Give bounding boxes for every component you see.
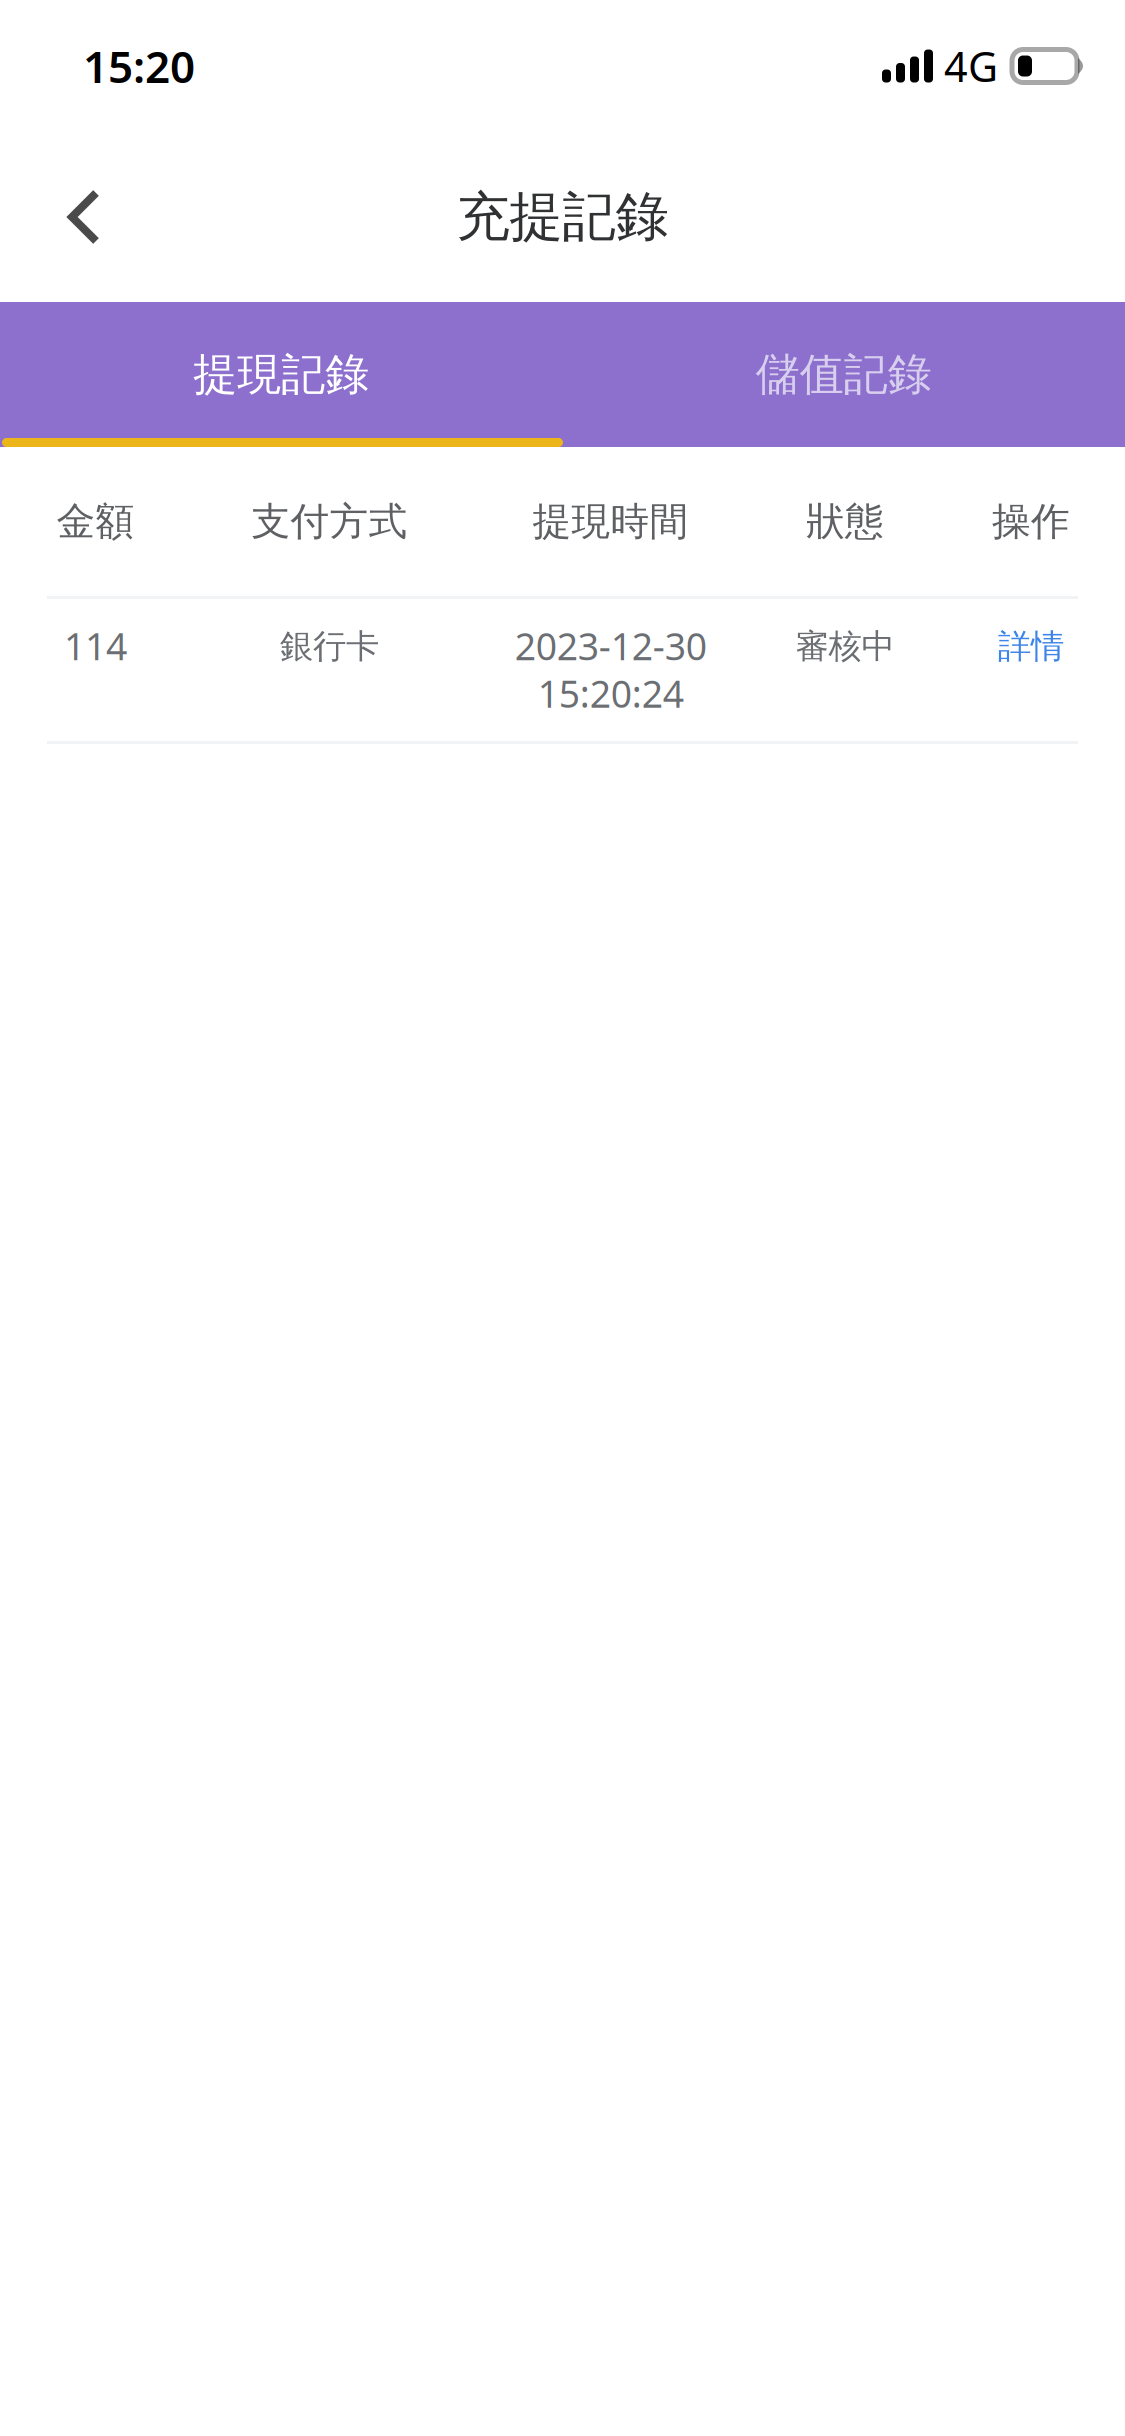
staticText: 4G bbox=[944, 39, 998, 93]
button[interactable]: 儲值記錄 bbox=[562, 302, 1125, 447]
staticText: 2023-12-30 15:20:24 bbox=[514, 621, 706, 718]
staticText: 15:20 bbox=[83, 37, 195, 95]
staticText: 提現時間 bbox=[532, 498, 688, 545]
staticText: 支付方式 bbox=[251, 498, 407, 545]
staticText: 114 bbox=[64, 621, 127, 671]
staticText: 審核中 bbox=[795, 626, 894, 667]
staticText: 詳情 bbox=[998, 626, 1064, 667]
staticText: 狀態 bbox=[806, 498, 884, 545]
button[interactable]: 詳情 bbox=[937, 621, 1125, 667]
staticText: 充提記錄 bbox=[456, 184, 668, 250]
staticText: 儲值記錄 bbox=[756, 347, 932, 401]
staticText: 操作 bbox=[992, 498, 1070, 545]
staticText: 提現記錄 bbox=[193, 347, 369, 401]
staticText: 銀行卡 bbox=[280, 626, 379, 667]
staticText: 金額 bbox=[56, 498, 134, 545]
button[interactable]: Back bbox=[0, 154, 140, 280]
button[interactable]: 提現記錄 bbox=[0, 302, 562, 447]
